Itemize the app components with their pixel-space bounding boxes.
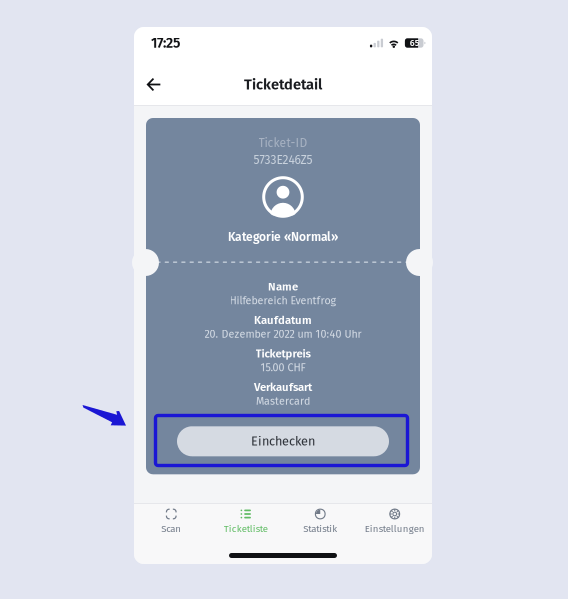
staticText: Scan	[161, 523, 181, 534]
button[interactable]: Statistik	[283, 502, 357, 549]
staticText: Ticketpreis	[255, 347, 310, 361]
staticText: Ticketdetail	[244, 76, 322, 93]
staticText: 20. Dezember 2022 um 10:40 Uhr	[204, 328, 361, 341]
staticText: Hilfebereich Eventfrog	[229, 294, 336, 307]
button[interactable]: Einchecken	[177, 426, 389, 456]
staticText: Kaufdatum	[254, 313, 312, 327]
staticText: 15.00 CHF	[260, 361, 305, 374]
staticText: Name	[268, 280, 298, 294]
button[interactable]: Scan	[134, 502, 208, 549]
staticText: Ticketliste	[224, 523, 268, 534]
button[interactable]: Back	[138, 59, 170, 104]
staticText: 17:25	[151, 35, 180, 51]
staticText: Statistik	[303, 523, 337, 534]
staticText: Einchecken	[251, 434, 315, 449]
staticText: Einstellungen	[365, 523, 425, 534]
staticText: 65	[410, 38, 420, 48]
staticText: Verkaufsart	[254, 380, 312, 394]
button[interactable]: Ticketliste	[208, 502, 283, 549]
staticText: Ticket-ID	[258, 136, 307, 150]
staticText: 5733E246Z5	[253, 153, 312, 167]
button[interactable]: Einstellungen	[357, 502, 432, 549]
staticText: Kategorie «Normal»	[228, 230, 338, 244]
staticText: Mastercard	[256, 395, 310, 408]
